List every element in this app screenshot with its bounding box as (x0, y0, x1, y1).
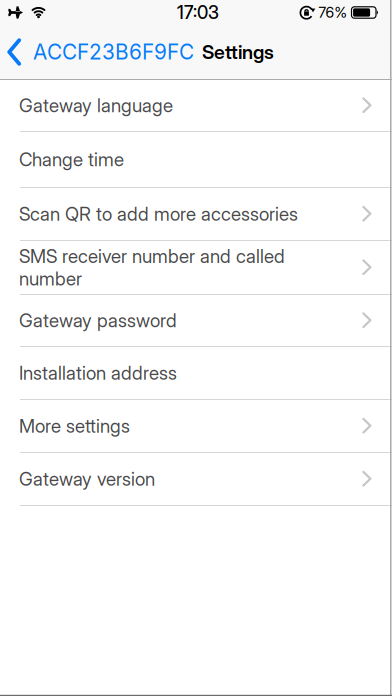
staticText: Change time (19, 148, 124, 171)
button[interactable]: Installation address (0, 347, 392, 400)
staticText: 76% (318, 4, 346, 21)
button[interactable]: Gateway language (0, 80, 392, 132)
button[interactable]: Back (0, 38, 194, 66)
staticText: Settings (202, 40, 274, 64)
staticText: SMS receiver number and called (19, 245, 285, 267)
staticText: More settings (19, 415, 130, 437)
button[interactable]: Gateway version (0, 453, 392, 506)
button[interactable]: Gateway password (0, 295, 392, 347)
staticText: Scan QR to add more accessories (19, 203, 298, 225)
button[interactable]: SMS receiver number and called (0, 241, 392, 295)
button[interactable]: Scan QR to add more accessories (0, 188, 392, 241)
staticText: Gateway language (19, 94, 173, 117)
button[interactable]: Change time (0, 132, 392, 188)
staticText: Gateway version (19, 468, 155, 490)
staticText: Gateway password (19, 309, 177, 332)
staticText: Installation address (19, 362, 177, 384)
button[interactable]: More settings (0, 400, 392, 453)
staticText: ACCF23B6F9FC (33, 39, 194, 65)
staticText: 17:03 (177, 2, 219, 23)
staticText: number (19, 267, 82, 290)
